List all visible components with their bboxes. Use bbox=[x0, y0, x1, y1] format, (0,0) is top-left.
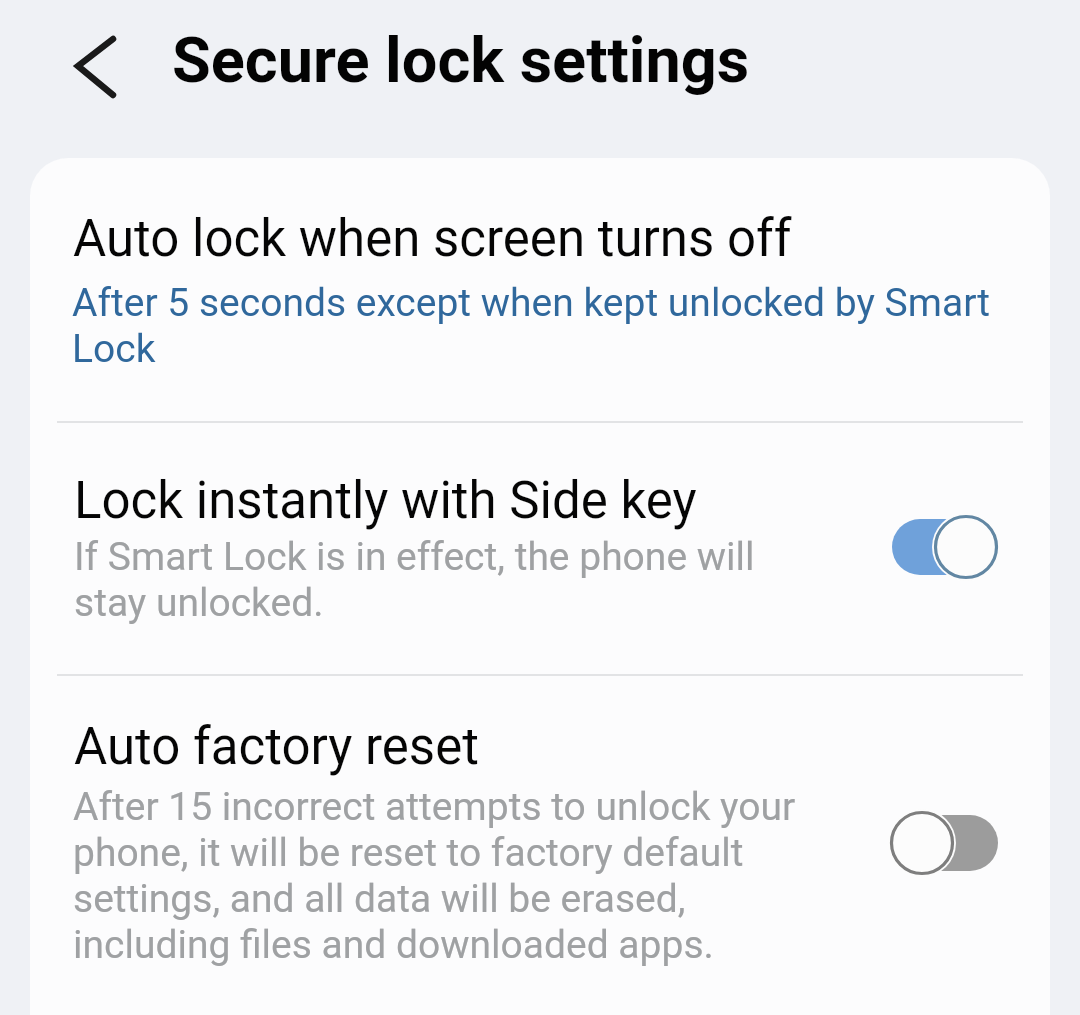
button[interactable] bbox=[30, 676, 1050, 1015]
button[interactable] bbox=[892, 513, 1002, 581]
staticText: If Smart Lock is in effect, the phone wi… bbox=[74, 534, 755, 626]
staticText: Secure lock settings bbox=[172, 24, 750, 98]
button[interactable] bbox=[892, 809, 1002, 877]
staticText: After 5 seconds except when kept unlocke… bbox=[72, 280, 991, 372]
button[interactable] bbox=[58, 24, 134, 108]
button[interactable] bbox=[30, 423, 1050, 674]
staticText: Auto factory reset bbox=[74, 717, 479, 777]
button[interactable] bbox=[30, 158, 1050, 421]
staticText: Auto lock when screen turns off bbox=[73, 209, 792, 269]
staticText: Lock instantly with Side key bbox=[74, 471, 697, 531]
staticText: After 15 incorrect attempts to unlock yo… bbox=[73, 784, 796, 968]
